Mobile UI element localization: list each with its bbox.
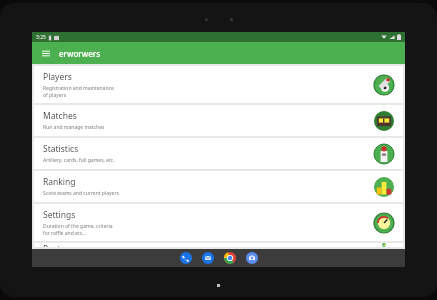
staticText: Statistics <box>43 143 79 155</box>
button[interactable]: Players <box>34 66 403 103</box>
staticText: for raffle and etc... <box>43 230 87 237</box>
staticText: Ranking <box>43 176 76 188</box>
staticText: Registration and maintenance <box>43 85 114 92</box>
staticText: Run and manage matches <box>43 124 105 131</box>
button[interactable]: Posts <box>34 243 403 247</box>
staticText: Score teams and current players <box>43 190 119 197</box>
staticText: Matches <box>43 110 77 122</box>
button[interactable]: Statistics <box>34 138 403 169</box>
button[interactable]: Messages <box>202 252 214 264</box>
staticText: erworwers <box>59 48 101 59</box>
staticText: Settings <box>43 209 76 221</box>
button[interactable]: Chrome <box>224 252 236 264</box>
staticText: of players <box>43 92 67 99</box>
staticText: Artillery, cards, full games, etc. <box>43 157 115 164</box>
staticText: Players <box>43 71 72 83</box>
button[interactable]: Ranking <box>34 171 403 202</box>
button[interactable]: Matches <box>34 105 403 136</box>
button[interactable]: Camera <box>246 252 258 264</box>
staticText: Posts <box>43 243 65 247</box>
button[interactable]: Phone <box>180 252 192 264</box>
button[interactable]: Settings <box>34 204 403 241</box>
button[interactable]: Open navigation drawer <box>39 46 53 60</box>
staticText: 3:25 <box>36 34 46 41</box>
staticText: Duration of the game, criteria <box>43 223 113 230</box>
